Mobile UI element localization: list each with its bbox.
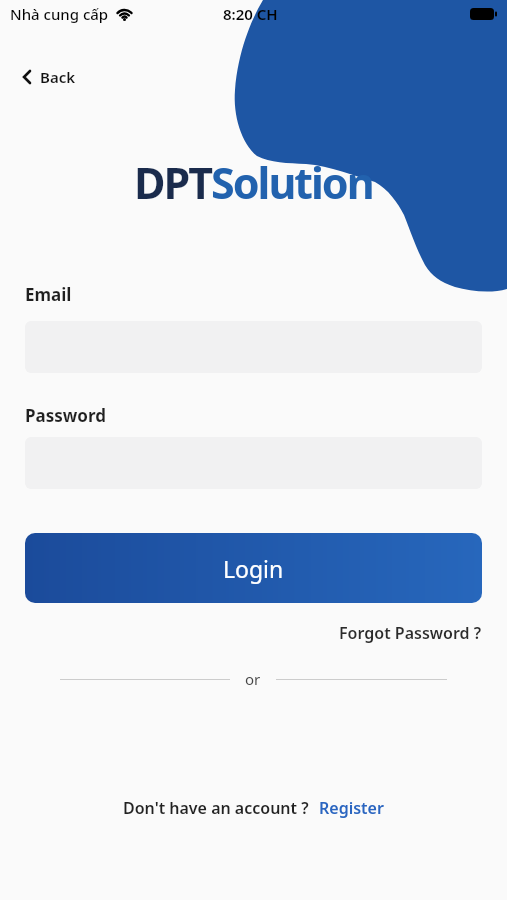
button[interactable]: Back bbox=[22, 67, 76, 87]
button[interactable]: Forgot Password ? bbox=[339, 622, 482, 644]
button[interactable]: Login bbox=[25, 533, 482, 603]
staticText: Password bbox=[25, 404, 106, 427]
staticText: 8:20 CH bbox=[223, 4, 278, 24]
staticText: Solution bbox=[211, 153, 373, 212]
staticText: Don't have an account ? bbox=[123, 797, 309, 819]
staticText: Login bbox=[223, 553, 284, 584]
button[interactable]: Register bbox=[319, 797, 384, 819]
staticText: or bbox=[245, 669, 261, 689]
staticText: Email bbox=[25, 283, 72, 306]
staticText: Back bbox=[40, 67, 76, 87]
staticText: Nhà cung cấp bbox=[10, 4, 109, 24]
staticText: DPT bbox=[134, 153, 211, 212]
